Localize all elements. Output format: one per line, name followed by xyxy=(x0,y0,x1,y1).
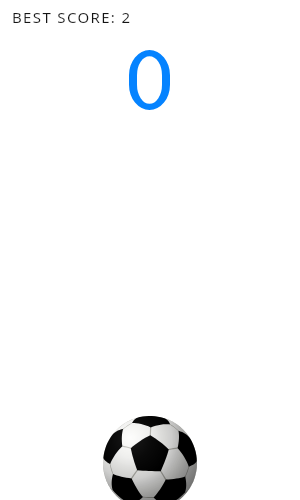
button[interactable]: Soccer ball xyxy=(103,416,197,500)
staticText: BEST SCORE: 2 xyxy=(12,7,132,27)
